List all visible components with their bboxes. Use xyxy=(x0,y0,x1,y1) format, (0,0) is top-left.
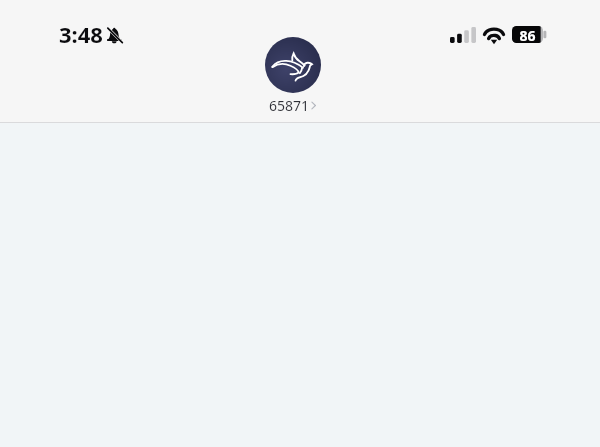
button[interactable]: Account 65871 xyxy=(255,37,330,115)
other: Notifications muted xyxy=(107,27,123,44)
other: Cellular signal xyxy=(450,27,476,43)
other: Wi-Fi xyxy=(483,27,505,43)
other: Battery 86 percent xyxy=(512,26,547,43)
staticText: 65871 xyxy=(269,96,310,115)
staticText: 3:48 xyxy=(59,19,103,49)
staticText: 86 xyxy=(519,26,536,43)
